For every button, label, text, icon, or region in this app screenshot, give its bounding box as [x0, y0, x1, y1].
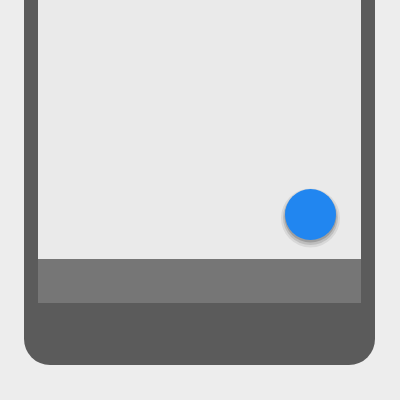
button[interactable]: Add — [285, 189, 336, 240]
